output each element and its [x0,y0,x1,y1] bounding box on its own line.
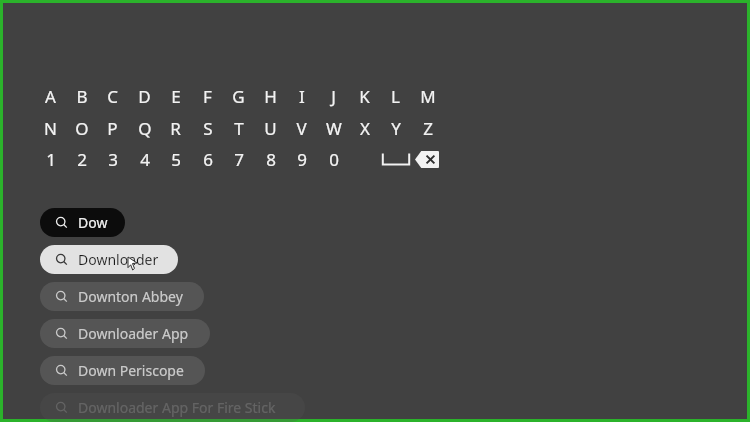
button[interactable]: O [66,114,97,142]
staticText: G [232,85,245,108]
button[interactable]: W [318,114,349,142]
button[interactable]: E [160,82,191,110]
button[interactable]: U [255,114,286,142]
staticText: O [75,117,89,140]
staticText: B [76,85,88,108]
button[interactable]: 9 [286,145,317,173]
staticText: I [299,85,305,108]
staticText: F [203,85,212,108]
button[interactable]: N [35,114,66,142]
staticText: Dow [78,213,108,232]
button[interactable]: Y [380,114,411,142]
staticText: D [138,85,151,108]
button[interactable]: 3 [97,145,128,173]
button[interactable]: 6 [192,145,223,173]
staticText: H [264,85,277,108]
staticText: 9 [297,148,307,171]
staticText: Y [391,117,401,140]
staticText: Down Periscope [78,361,184,380]
staticText: E [171,85,181,108]
button[interactable]: M [412,82,443,110]
button[interactable]: Downton Abbey [40,282,204,311]
staticText: C [107,85,118,108]
staticText: 0 [329,148,339,171]
button[interactable]: V [286,114,317,142]
staticText: Downloader [78,250,159,269]
button[interactable]: Downloader [40,245,178,274]
staticText: 4 [140,148,150,171]
staticText: R [170,117,181,140]
staticText: Downloader App [78,324,189,343]
button[interactable]: 8 [255,145,286,173]
button[interactable]: L [380,82,411,110]
staticText: 2 [77,148,87,171]
staticText: A [45,85,56,108]
button[interactable]: T [223,114,254,142]
button[interactable]: 1 [35,145,66,173]
staticText: J [331,85,336,108]
staticText: 6 [203,148,213,171]
staticText: Downton Abbey [78,287,183,306]
button[interactable]: Backspace [410,145,444,173]
staticText: L [391,85,400,108]
button[interactable]: Space [379,145,413,173]
staticText: S [203,117,213,140]
staticText: N [44,117,57,140]
button[interactable]: Q [129,114,160,142]
button[interactable]: Downloader App [40,319,210,348]
staticText: W [326,117,342,140]
staticText: U [264,117,277,140]
button[interactable]: I [286,82,317,110]
button[interactable]: B [66,82,97,110]
staticText: 3 [108,148,118,171]
staticText: M [420,85,436,108]
button[interactable]: 2 [66,145,97,173]
staticText: Downloader App For Fire Stick [78,398,276,417]
button[interactable]: H [255,82,286,110]
staticText: Z [423,117,433,140]
staticText: V [296,117,307,140]
staticText: T [234,117,244,140]
button[interactable]: G [223,82,254,110]
button[interactable]: X [349,114,380,142]
button[interactable]: 5 [160,145,191,173]
staticText: P [107,117,118,140]
button[interactable]: Downloader App For Fire Stick [40,393,305,422]
button[interactable]: S [192,114,223,142]
button[interactable]: 4 [129,145,160,173]
button[interactable]: 7 [223,145,254,173]
staticText: 8 [266,148,276,171]
staticText: K [359,85,370,108]
button[interactable]: D [129,82,160,110]
button[interactable]: K [349,82,380,110]
staticText: 7 [234,148,244,171]
button[interactable]: J [318,82,349,110]
button[interactable]: P [97,114,128,142]
button[interactable]: Z [412,114,443,142]
button[interactable]: Down Periscope [40,356,205,385]
button[interactable]: A [35,82,66,110]
button[interactable]: R [160,114,191,142]
staticText: Q [138,117,152,140]
button[interactable]: 0 [318,145,349,173]
button[interactable]: F [192,82,223,110]
staticText: 1 [46,148,56,171]
button[interactable]: C [97,82,128,110]
button[interactable]: Dow [40,208,125,237]
staticText: 5 [171,148,181,171]
staticText: X [360,117,370,140]
